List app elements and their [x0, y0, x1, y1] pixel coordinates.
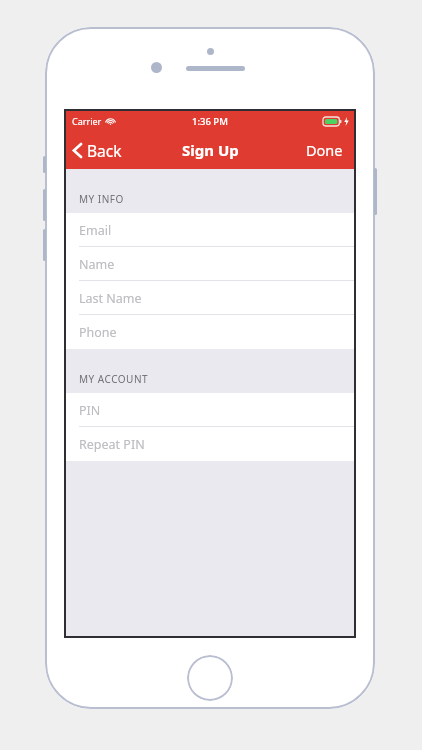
staticText: Email	[79, 222, 112, 239]
staticText: Carrier	[72, 115, 102, 127]
button[interactable]: Home	[187, 655, 233, 701]
staticText: MY ACCOUNT	[79, 372, 149, 386]
staticText: PIN	[79, 402, 101, 419]
staticText: Phone	[79, 324, 117, 341]
button[interactable]: Name	[66, 247, 354, 281]
button[interactable]: PIN	[66, 393, 354, 427]
button[interactable]: Back	[66, 131, 134, 169]
staticText: Back	[87, 140, 122, 161]
staticText: 1:36 PM	[192, 115, 228, 128]
staticText: Sign Up	[182, 140, 239, 160]
staticText: Name	[79, 256, 115, 273]
button[interactable]: Email	[66, 213, 354, 247]
staticText: Repeat PIN	[79, 436, 145, 453]
button[interactable]: Last Name	[66, 281, 354, 315]
staticText: MY INFO	[79, 192, 124, 206]
button[interactable]: Repeat PIN	[66, 427, 354, 461]
staticText: Last Name	[79, 290, 142, 307]
button[interactable]: Done	[295, 131, 354, 169]
staticText: Done	[306, 140, 343, 160]
button[interactable]: Phone	[66, 315, 354, 349]
